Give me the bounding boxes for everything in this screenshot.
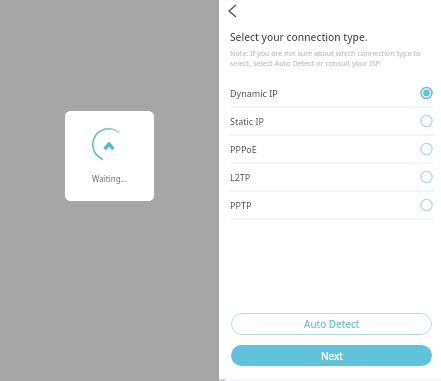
button[interactable]: Dynamic IP (219, 80, 441, 108)
staticText: L2TP (230, 171, 251, 183)
button[interactable]: PPTP (219, 192, 441, 220)
button[interactable]: PPPoE (219, 136, 441, 164)
staticText: Select your connection type. (230, 30, 368, 44)
staticText: Auto Detect (304, 317, 360, 331)
staticText: PPTP (230, 199, 252, 211)
staticText: Waiting... (65, 173, 154, 184)
button[interactable]: Static IP (219, 108, 441, 136)
button[interactable]: Auto Detect (231, 313, 432, 335)
staticText: Next (321, 349, 343, 363)
staticText: Static IP (230, 115, 264, 127)
staticText: Note: If you are not sure about which co… (230, 48, 432, 68)
staticText: PPPoE (230, 143, 257, 155)
button[interactable]: L2TP (219, 164, 441, 192)
button[interactable]: Next (231, 345, 432, 366)
staticText: Dynamic IP (230, 87, 278, 99)
button[interactable]: Back (220, 0, 244, 23)
